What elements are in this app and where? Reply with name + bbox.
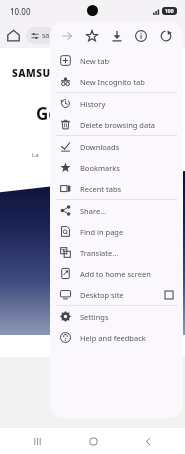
button[interactable]: Desktop site (50, 284, 183, 305)
staticText: Downloads (80, 142, 173, 152)
button[interactable]: Bookmarks (50, 157, 183, 178)
staticText: Delete browsing data (80, 120, 173, 130)
button[interactable]: Downloads (50, 136, 183, 157)
staticText: Add to home screen (80, 269, 173, 279)
staticText: New Incognito tab (80, 77, 173, 87)
staticText: Go (36, 102, 59, 125)
staticText: 100 (165, 8, 174, 15)
button[interactable]: Back (137, 430, 159, 452)
button[interactable]: New Incognito tab (50, 71, 183, 92)
staticText: Recent tabs (80, 184, 173, 194)
staticText: Find in page (80, 227, 173, 237)
staticText: Share... (80, 206, 173, 216)
button[interactable]: History (50, 93, 183, 114)
staticText: New tab (80, 56, 173, 66)
button[interactable]: Download (106, 25, 128, 47)
button[interactable]: Help and feedback (50, 327, 183, 348)
staticText: History (80, 99, 173, 109)
staticText: Bookmarks (80, 163, 173, 173)
button[interactable]: Recents (26, 430, 48, 452)
staticText: sa (42, 31, 50, 41)
button[interactable]: New tab (50, 50, 183, 71)
button[interactable]: Add to home screen (50, 263, 183, 284)
button[interactable]: Find in page (50, 221, 183, 242)
button[interactable]: Forward (56, 25, 78, 47)
button[interactable]: Translate... (50, 242, 183, 263)
button[interactable]: sa (31, 27, 50, 44)
staticText: Translate... (80, 248, 173, 258)
button[interactable]: Delete browsing data (50, 114, 183, 135)
button[interactable]: Bookmark (81, 25, 103, 47)
staticText: SAMSUNG (12, 66, 68, 80)
button[interactable]: Recent tabs (50, 178, 183, 199)
staticText: Help and feedback (80, 333, 173, 343)
button[interactable]: Page info (130, 25, 152, 47)
staticText: Desktop site (80, 290, 165, 300)
staticText: La (32, 151, 39, 159)
button[interactable]: Refresh (155, 25, 177, 47)
staticText: Settings (80, 312, 173, 322)
button[interactable]: Home (82, 430, 104, 452)
staticText: 10.00 (10, 6, 31, 17)
button[interactable]: Settings (50, 306, 183, 327)
other: Home (7, 29, 20, 42)
button[interactable]: Share... (50, 200, 183, 221)
